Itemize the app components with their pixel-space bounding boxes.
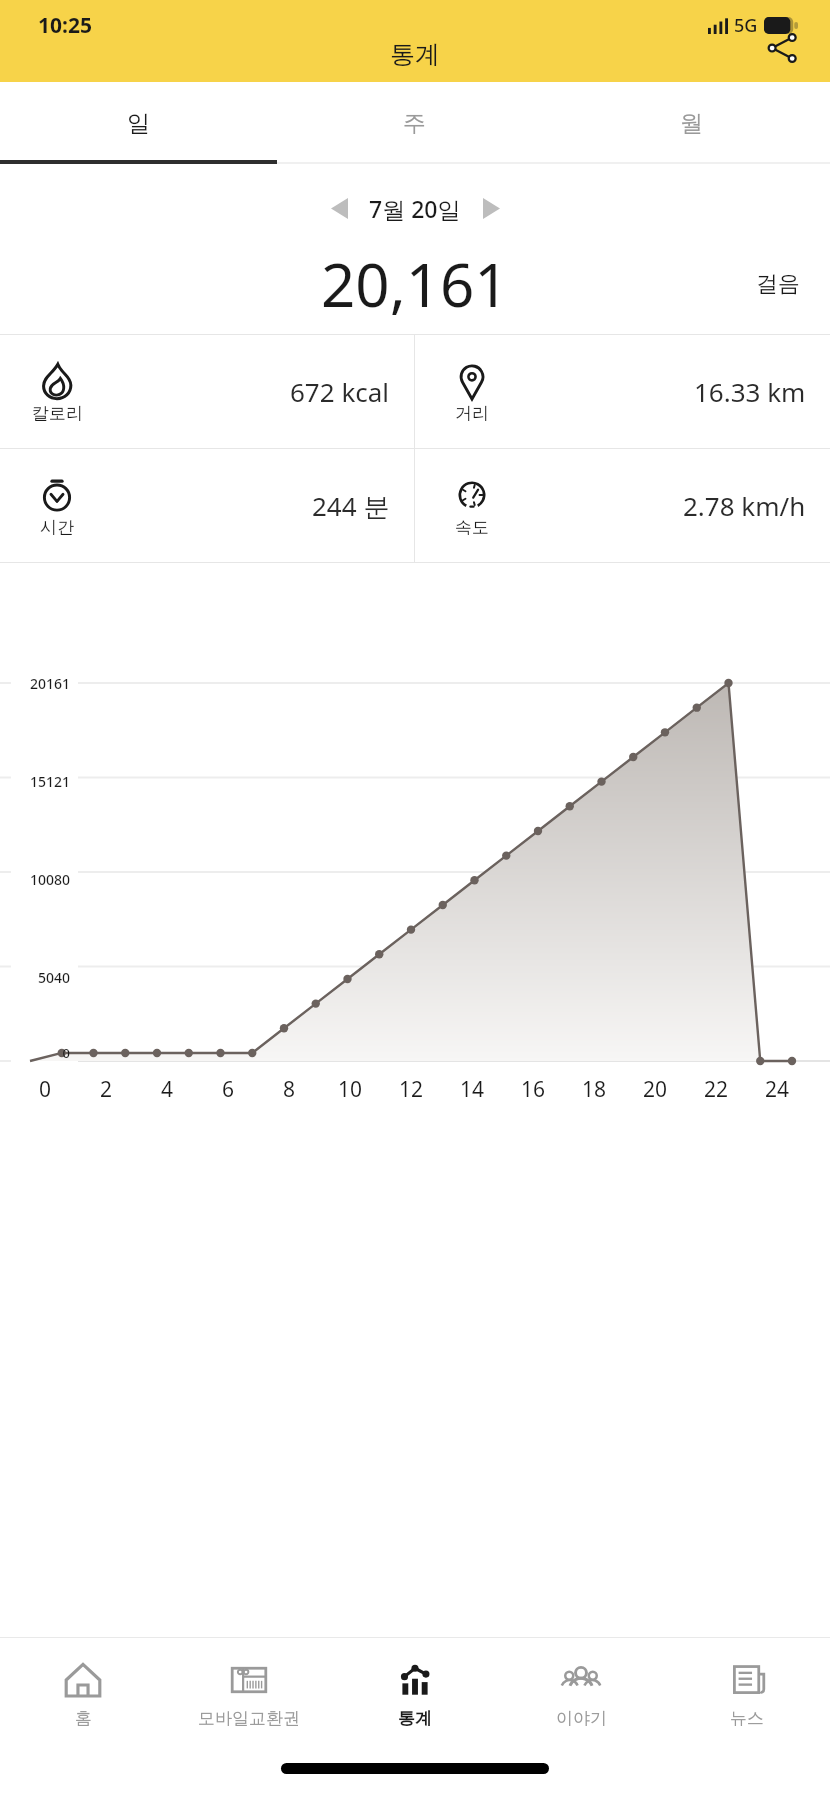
staticText: 16.33 km (694, 374, 806, 409)
staticText: 홈 (75, 1708, 92, 1729)
staticText: 10 (338, 1075, 363, 1104)
staticText: 일 (127, 109, 150, 138)
staticText: 12 (399, 1075, 424, 1104)
staticText: 14 (460, 1075, 485, 1104)
button[interactable]: 시간 (0, 449, 414, 562)
button[interactable]: 일 (0, 82, 276, 164)
staticText: 시간 (40, 517, 74, 538)
staticText: 15121 (12, 772, 70, 791)
button[interactable]: 통계 (332, 1638, 498, 1750)
staticText: 5G (734, 13, 758, 38)
staticText: 주 (403, 109, 426, 138)
staticText: 10:25 (38, 11, 92, 40)
staticText: 통계 (390, 39, 440, 70)
staticText: 월 (680, 109, 703, 138)
staticText: 칼로리 (32, 403, 83, 424)
staticText: 22 (704, 1075, 729, 1104)
staticText: 5040 (12, 968, 70, 987)
staticText: 7월 20일 (369, 193, 461, 224)
staticText: 6 (222, 1075, 235, 1104)
staticText: 10080 (12, 870, 70, 889)
button[interactable]: 월 (553, 82, 830, 164)
staticText: 이야기 (556, 1708, 607, 1729)
staticText: 20,161 (321, 243, 509, 325)
button[interactable]: Next day (467, 184, 515, 232)
staticText: 걸음 (756, 270, 800, 298)
button[interactable]: 칼로리 (0, 335, 414, 448)
staticText: 24 (765, 1075, 790, 1104)
staticText: 모바일교환권 (198, 1708, 300, 1729)
button[interactable]: 속도 (415, 449, 830, 562)
staticText: 2.78 km/h (683, 488, 806, 523)
staticText: 거리 (455, 403, 489, 424)
button[interactable]: 주 (276, 82, 553, 164)
staticText: 4 (161, 1075, 174, 1104)
staticText: 244 분 (312, 488, 390, 524)
staticText: 2 (100, 1075, 113, 1104)
staticText: 20 (643, 1075, 668, 1104)
staticText: 672 kcal (290, 374, 390, 409)
staticText: 0 (12, 1044, 70, 1062)
button[interactable]: 모바일교환권 (166, 1638, 332, 1750)
button[interactable]: Previous day (315, 184, 363, 232)
button[interactable]: Share (754, 20, 810, 76)
button[interactable]: 홈 (0, 1638, 166, 1750)
button[interactable]: 거리 (415, 335, 830, 448)
staticText: 뉴스 (730, 1708, 764, 1729)
staticText: 8 (283, 1075, 296, 1104)
staticText: 0 (39, 1075, 52, 1104)
button[interactable]: 뉴스 (664, 1638, 830, 1750)
staticText: 속도 (455, 517, 489, 538)
button[interactable]: 이야기 (498, 1638, 664, 1750)
staticText: 20161 (12, 674, 70, 693)
staticText: 18 (582, 1075, 607, 1104)
staticText: 통계 (398, 1708, 432, 1729)
staticText: 16 (521, 1075, 546, 1104)
